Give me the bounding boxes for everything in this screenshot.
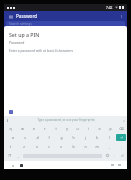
staticText: m <box>95 144 99 149</box>
staticText: ⌫ <box>119 127 124 131</box>
staticText: h <box>72 135 75 140</box>
button[interactable]: Enter <box>116 134 126 141</box>
button[interactable]: m <box>91 142 103 151</box>
button[interactable]: i <box>83 124 94 133</box>
button[interactable]: p <box>105 124 116 133</box>
staticText: v <box>60 144 62 149</box>
button[interactable]: e <box>28 124 39 133</box>
button[interactable]: Keyboard settings <box>122 119 125 122</box>
staticText: d <box>36 135 39 140</box>
button[interactable]: g <box>55 133 67 142</box>
button[interactable]: u <box>72 124 83 133</box>
staticText: o <box>98 126 101 131</box>
staticText: k <box>96 135 98 140</box>
button[interactable]: o <box>94 124 105 133</box>
button[interactable]: z <box>17 142 30 151</box>
button[interactable]: w <box>16 124 28 133</box>
staticText: , <box>18 153 19 158</box>
staticText: s <box>24 135 26 140</box>
staticText: j <box>85 135 86 140</box>
button[interactable]: ⌫ <box>116 124 127 133</box>
button[interactable]: q <box>4 124 16 133</box>
button[interactable]: Back <box>10 163 15 168</box>
staticText: u <box>76 126 79 131</box>
button[interactable]: r <box>39 124 50 133</box>
staticText: x <box>36 144 38 149</box>
button[interactable]: More options <box>118 13 124 19</box>
staticText: q <box>9 126 12 131</box>
staticText: Search settings <box>9 22 32 26</box>
staticText: g <box>60 135 63 140</box>
staticText: p <box>109 126 112 131</box>
staticText: z <box>23 144 25 149</box>
staticText: f <box>48 135 50 140</box>
button[interactable]: f <box>43 133 55 142</box>
button[interactable]: Clipboard <box>6 119 9 122</box>
button[interactable]: Recents <box>117 163 121 167</box>
button[interactable]: t <box>50 124 61 133</box>
staticText: a <box>12 135 14 140</box>
staticText: Enter a password with at least 4 charact… <box>9 49 73 53</box>
button[interactable]: c <box>43 142 55 151</box>
staticText: . <box>114 153 115 158</box>
button[interactable]: v <box>55 142 67 151</box>
staticText: y <box>66 126 68 131</box>
staticText: r <box>44 126 46 131</box>
staticText: 7:42 <box>106 6 113 10</box>
staticText: Password <box>9 40 25 45</box>
staticText: e <box>33 126 35 131</box>
staticText: i <box>88 126 89 131</box>
button[interactable]: ?1 <box>5 151 14 160</box>
button[interactable]: a <box>7 133 19 142</box>
button[interactable]: Search settings <box>6 21 125 27</box>
button[interactable]: Screenshot <box>110 163 114 167</box>
staticText: t <box>55 126 57 131</box>
staticText: b <box>72 144 75 149</box>
staticText: l <box>109 135 110 140</box>
button[interactable]: s <box>19 133 31 142</box>
button[interactable]: l <box>103 133 115 142</box>
staticText: ⇧ <box>9 145 12 149</box>
button[interactable]: h <box>67 133 79 142</box>
button[interactable]: y <box>61 124 72 133</box>
staticText: Password <box>16 13 38 19</box>
button[interactable]: Emoji <box>103 151 111 160</box>
staticText: Type a password, or use your fingerprint <box>37 118 95 122</box>
staticText: . <box>121 144 122 149</box>
staticText: Set up a PIN <box>9 31 40 38</box>
button[interactable]: b <box>67 142 79 151</box>
staticText: ⏎ <box>121 154 124 158</box>
staticText: c <box>48 144 50 149</box>
button[interactable]: Home <box>19 163 24 168</box>
staticText: w <box>21 126 24 131</box>
button[interactable]: Cursor handle <box>9 110 13 114</box>
staticText: ?1 <box>8 153 12 158</box>
staticText: n <box>84 144 87 149</box>
button[interactable]: , <box>103 142 115 151</box>
staticText: , <box>109 144 110 149</box>
button[interactable]: , <box>14 151 22 160</box>
button[interactable]: ⇧ <box>4 142 17 151</box>
button[interactable]: d <box>31 133 43 142</box>
button[interactable]: Navigate up <box>7 13 14 20</box>
button[interactable]: n <box>79 142 91 151</box>
button[interactable]: x <box>30 142 43 151</box>
button[interactable]: j <box>79 133 91 142</box>
button[interactable]: ⏎ <box>118 151 126 160</box>
button[interactable]: k <box>91 133 103 142</box>
